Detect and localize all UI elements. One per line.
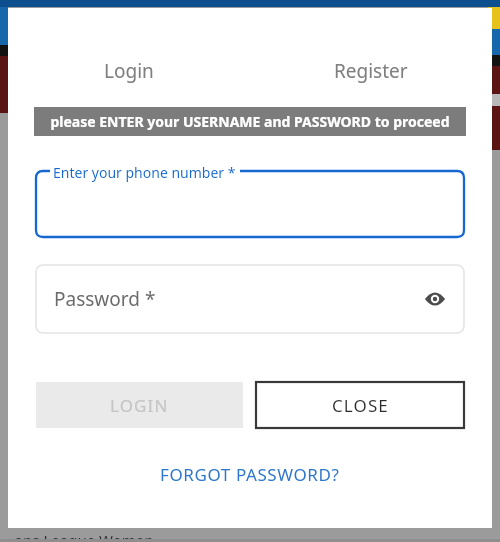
button[interactable]: Show password bbox=[418, 282, 452, 316]
staticText: Register bbox=[334, 58, 408, 84]
button[interactable]: Password * bbox=[36, 265, 464, 333]
button[interactable]: LOGIN bbox=[36, 382, 243, 428]
button[interactable]: CLOSE bbox=[256, 382, 464, 428]
staticText: Login bbox=[104, 58, 154, 84]
button[interactable]: Enter your phone number * bbox=[36, 163, 464, 237]
button[interactable]: FORGOT PASSWORD? bbox=[148, 457, 352, 492]
staticText: please ENTER your USERNAME and PASSWORD … bbox=[50, 112, 450, 131]
staticText: CLOSE bbox=[332, 394, 389, 417]
staticText: ons League Women bbox=[14, 530, 154, 542]
staticText: Password * bbox=[54, 286, 156, 312]
staticText: FORGOT PASSWORD? bbox=[160, 463, 340, 486]
staticText: LOGIN bbox=[110, 394, 169, 417]
staticText: Enter your phone number * bbox=[53, 163, 236, 182]
button[interactable]: Register bbox=[250, 54, 492, 88]
button[interactable]: Login bbox=[8, 54, 250, 88]
